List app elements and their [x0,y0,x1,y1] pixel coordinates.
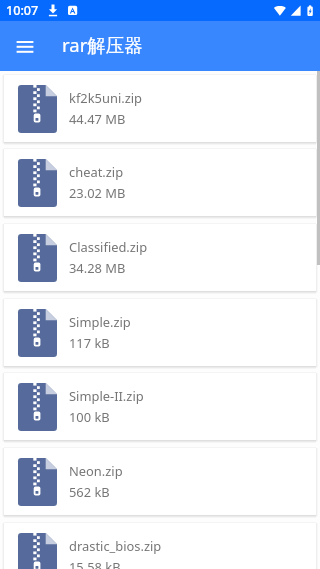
staticText: 34.28 MB [69,259,126,277]
button[interactable]: drastic_bios.zip [4,523,316,569]
staticText: rar解压器 [62,32,143,57]
staticText: 10:07 [6,2,39,19]
button[interactable]: Simple-II.zip [4,373,316,440]
button[interactable]: kf2k5uni.zip [4,75,316,142]
button[interactable]: Open navigation menu [8,33,42,67]
button[interactable]: Simple.zip [4,299,316,366]
staticText: cheat.zip [69,163,124,181]
staticText: 100 kB [69,408,110,426]
staticText: 44.47 MB [69,110,126,128]
button[interactable]: cheat.zip [4,149,316,216]
button[interactable]: Neon.zip [4,448,316,515]
staticText: Simple-II.zip [69,387,144,405]
staticText: 117 kB [69,334,110,352]
staticText: Neon.zip [69,462,123,480]
staticText: kf2k5uni.zip [69,89,142,107]
staticText: 562 kB [69,483,110,501]
staticText: Classified.zip [69,238,148,256]
staticText: drastic_bios.zip [69,537,162,555]
button[interactable]: Classified.zip [4,224,316,291]
staticText: 15.58 kB [69,558,121,569]
staticText: Simple.zip [69,313,131,331]
staticText: 23.02 MB [69,184,126,202]
